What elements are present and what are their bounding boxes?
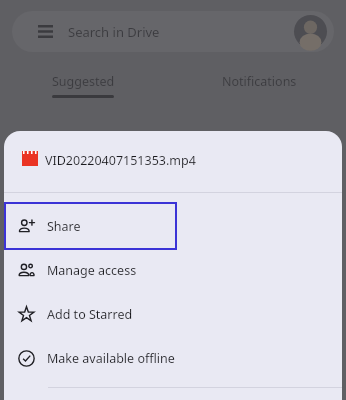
button[interactable]: Make available offline: [4, 336, 342, 380]
button[interactable]: Suggested: [21, 62, 145, 101]
other: Account: [294, 15, 327, 48]
staticText: Search in Drive: [68, 23, 160, 41]
button[interactable]: Manage access: [4, 248, 342, 292]
staticText: Share: [47, 218, 81, 235]
staticText: Add to Starred: [47, 306, 133, 323]
staticText: VID20220407151353.mp4: [45, 152, 196, 169]
button[interactable]: VID20220407151353.mp4: [4, 131, 342, 192]
staticText: Manage access: [47, 262, 137, 279]
button[interactable]: Share: [4, 202, 177, 250]
staticText: Make available offline: [47, 350, 175, 367]
staticText: Suggested: [52, 73, 115, 90]
button[interactable]: Add to Starred: [4, 292, 342, 336]
other: Open navigation drawer: [38, 25, 53, 38]
button[interactable]: Notifications: [197, 62, 321, 101]
button[interactable]: Open navigation drawer: [12, 11, 334, 52]
staticText: Notifications: [222, 73, 297, 90]
